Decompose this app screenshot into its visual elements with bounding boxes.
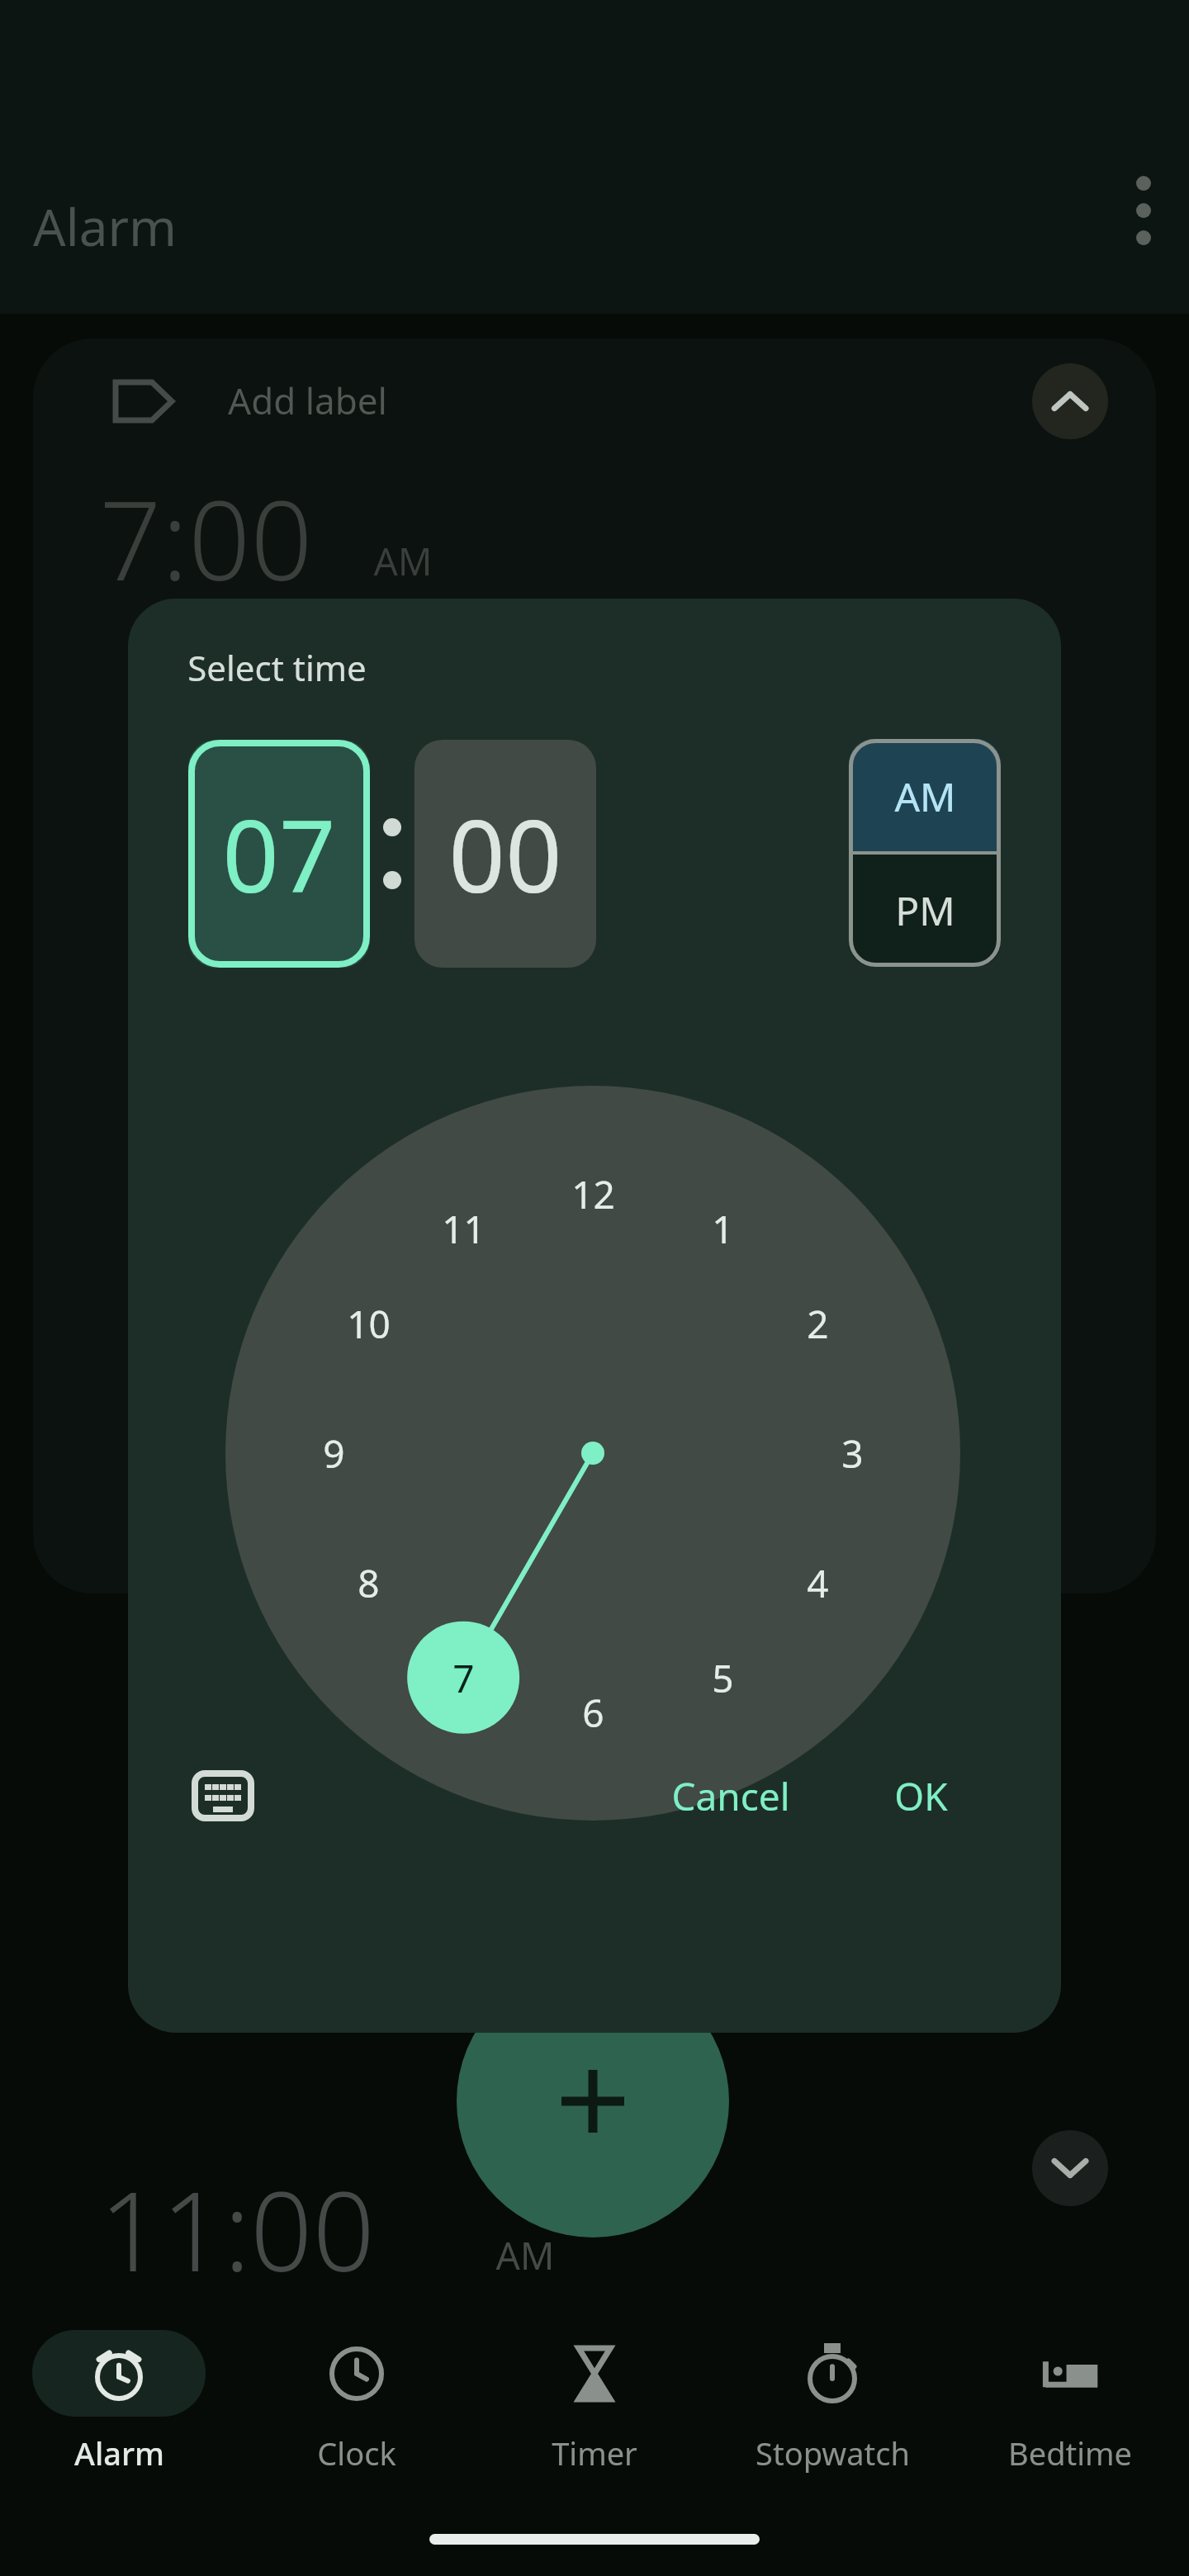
button[interactable]: Cancel	[648, 1754, 813, 1837]
staticText: 7:00	[99, 464, 313, 613]
staticText: Add label	[228, 376, 387, 425]
button[interactable]: Clock	[238, 2312, 476, 2502]
staticText: OK	[894, 1770, 948, 1822]
staticText: 3	[841, 1428, 864, 1480]
staticText: Alarm	[33, 192, 177, 261]
staticText: 7	[452, 1652, 475, 1704]
staticText: Cancel	[671, 1770, 790, 1822]
button[interactable]: Alarm	[0, 2312, 238, 2502]
button[interactable]: PM	[849, 853, 1001, 967]
staticText: 9	[323, 1428, 345, 1480]
staticText: 00	[448, 787, 562, 921]
staticText: AM	[495, 2229, 555, 2281]
staticText: 11:00	[99, 2155, 375, 2304]
staticText: AM	[373, 535, 433, 587]
staticText: 8	[358, 1557, 380, 1609]
staticText: 6	[582, 1687, 604, 1739]
staticText: AM	[894, 769, 956, 823]
button[interactable]: OK	[855, 1754, 987, 1837]
button[interactable]: Collapse	[1032, 363, 1108, 439]
button[interactable]: AM	[849, 739, 1001, 853]
staticText: Stopwatch	[756, 2432, 910, 2474]
staticText: Bedtime	[1008, 2432, 1132, 2474]
staticText: PM	[895, 883, 955, 937]
staticText: 10	[347, 1298, 391, 1350]
button[interactable]: Stopwatch	[713, 2312, 951, 2502]
button[interactable]	[33, 339, 1156, 1593]
button[interactable]: 12	[225, 1086, 960, 1821]
staticText: Clock	[317, 2432, 396, 2474]
button[interactable]: 07	[188, 740, 370, 968]
button[interactable]: More options	[1098, 165, 1189, 256]
button[interactable]: Expand	[1032, 2130, 1108, 2206]
staticText: 11	[442, 1203, 486, 1255]
staticText: Select time	[187, 644, 367, 691]
button[interactable]: 00	[414, 740, 596, 968]
staticText: 1	[712, 1203, 734, 1255]
staticText: 2	[807, 1298, 829, 1350]
button[interactable]: Switch to text input mode	[178, 1750, 268, 1841]
staticText: 5	[712, 1652, 734, 1704]
staticText: 07	[222, 787, 336, 921]
staticText: 4	[807, 1557, 829, 1609]
staticText: Timer	[552, 2432, 637, 2474]
button[interactable]: Timer	[476, 2312, 713, 2502]
button[interactable]: Add alarm	[457, 1965, 729, 2237]
staticText: Alarm	[74, 2432, 164, 2474]
button[interactable]: Bedtime	[951, 2312, 1189, 2502]
staticText: 12	[571, 1168, 615, 1220]
